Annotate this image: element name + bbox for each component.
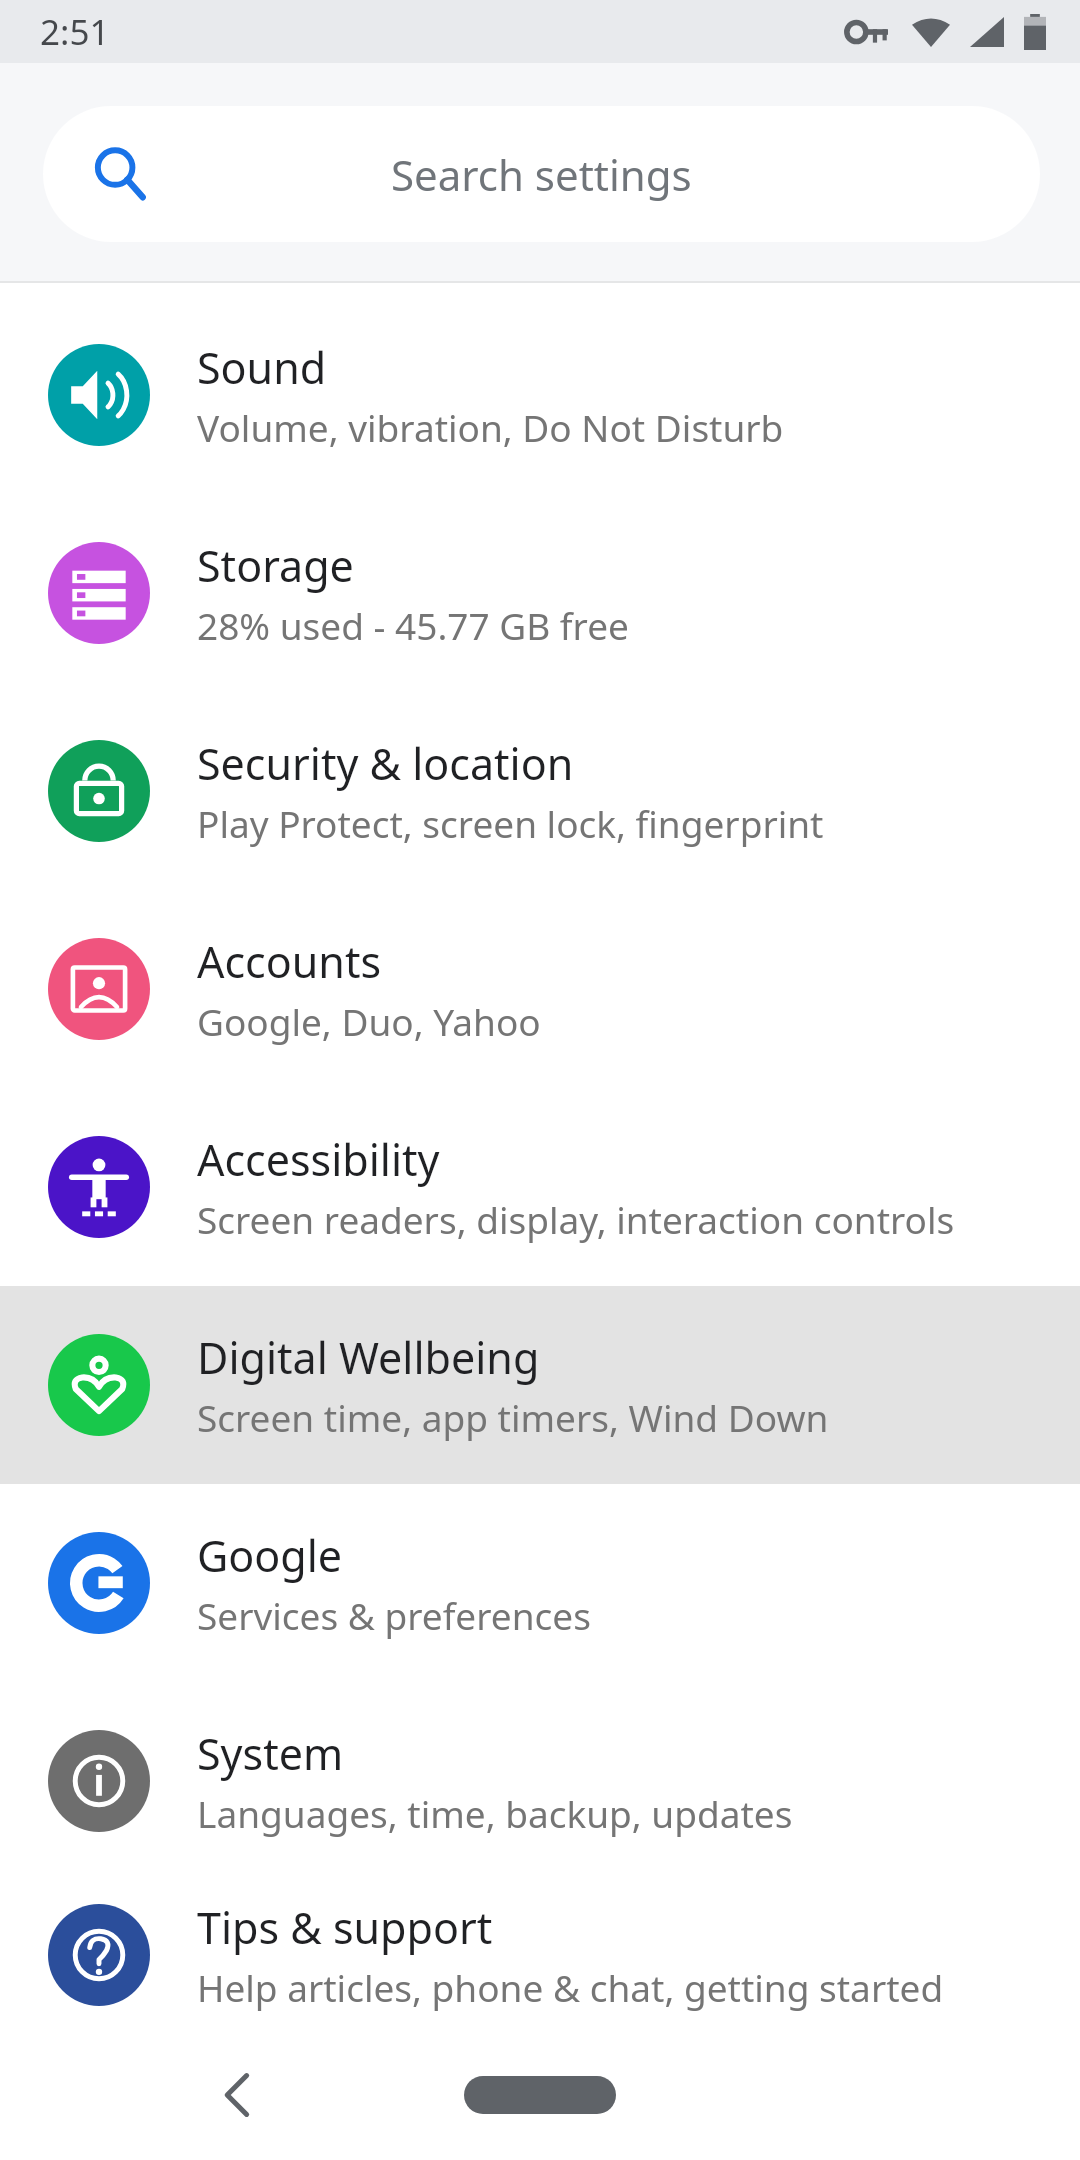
staticText: 2:51 [40,8,110,56]
staticText: Accessibility [197,1130,440,1189]
staticText: Help articles, phone & chat, getting sta… [197,1962,944,2012]
button[interactable]: Search settings [43,106,1040,242]
staticText: Screen readers, display, interaction con… [197,1194,955,1244]
button[interactable]: Home [464,2076,616,2114]
staticText: Google, Duo, Yahoo [197,996,541,1046]
staticText: 28% used - 45.77 GB free [197,600,629,650]
button[interactable]: Tips & support [0,1880,1080,2029]
staticText: Search settings [391,146,692,203]
staticText: Screen time, app timers, Wind Down [197,1392,829,1442]
button[interactable]: Accessibility [0,1088,1080,1286]
staticText: Volume, vibration, Do Not Disturb [197,402,784,452]
button[interactable]: Back [202,2059,274,2131]
button[interactable]: System [0,1682,1080,1880]
staticText: Tips & support [197,1898,493,1957]
staticText: System [197,1724,344,1783]
button[interactable]: Storage [0,494,1080,692]
button[interactable]: Digital Wellbeing [0,1286,1080,1484]
staticText: Play Protect, screen lock, fingerprint [197,798,824,848]
staticText: Digital Wellbeing [197,1328,540,1387]
staticText: Services & preferences [197,1590,591,1640]
button[interactable]: Sound [0,296,1080,494]
staticText: Google [197,1526,343,1585]
staticText: Storage [197,536,354,595]
staticText: Accounts [197,932,382,991]
staticText: Languages, time, backup, updates [197,1788,793,1838]
button[interactable]: Security & location [0,692,1080,890]
staticText: Sound [197,338,327,397]
button[interactable]: Google [0,1484,1080,1682]
staticText: Security & location [197,734,574,793]
button[interactable]: Accounts [0,890,1080,1088]
